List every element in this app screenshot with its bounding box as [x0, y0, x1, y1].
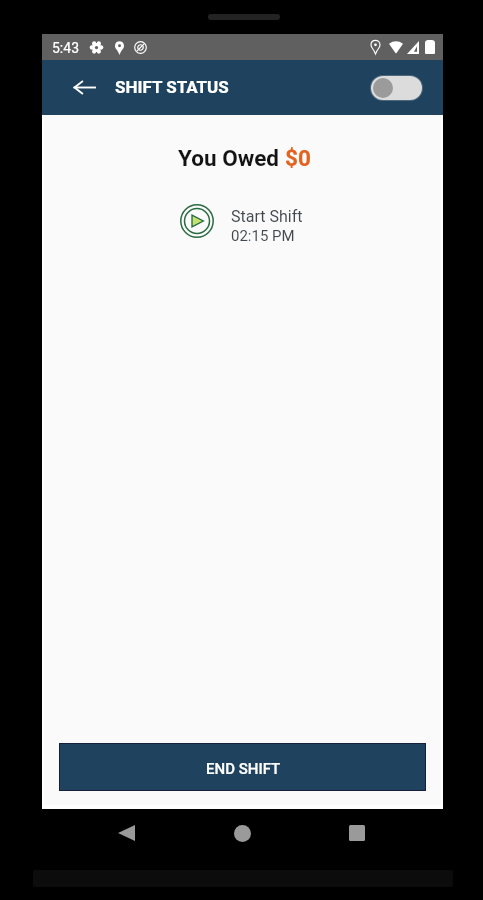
button[interactable]: Start Shift — [180, 194, 303, 232]
button[interactable]: END SHIFT — [59, 743, 426, 791]
staticText: $0 — [285, 145, 311, 171]
staticText: END SHIFT — [206, 760, 281, 778]
staticText: You Owed — [178, 145, 285, 171]
button[interactable]: Back — [106, 813, 146, 853]
staticText: 5:43 — [52, 40, 79, 56]
button[interactable]: Recents — [337, 813, 377, 853]
button[interactable]: Home — [222, 813, 262, 853]
staticText: SHIFT STATUS — [115, 77, 229, 97]
staticText: 02:15 PM — [231, 227, 295, 245]
button[interactable]: Toggle shift — [363, 71, 423, 104]
staticText: Start Shift — [231, 207, 303, 226]
button[interactable]: Back — [62, 65, 106, 109]
